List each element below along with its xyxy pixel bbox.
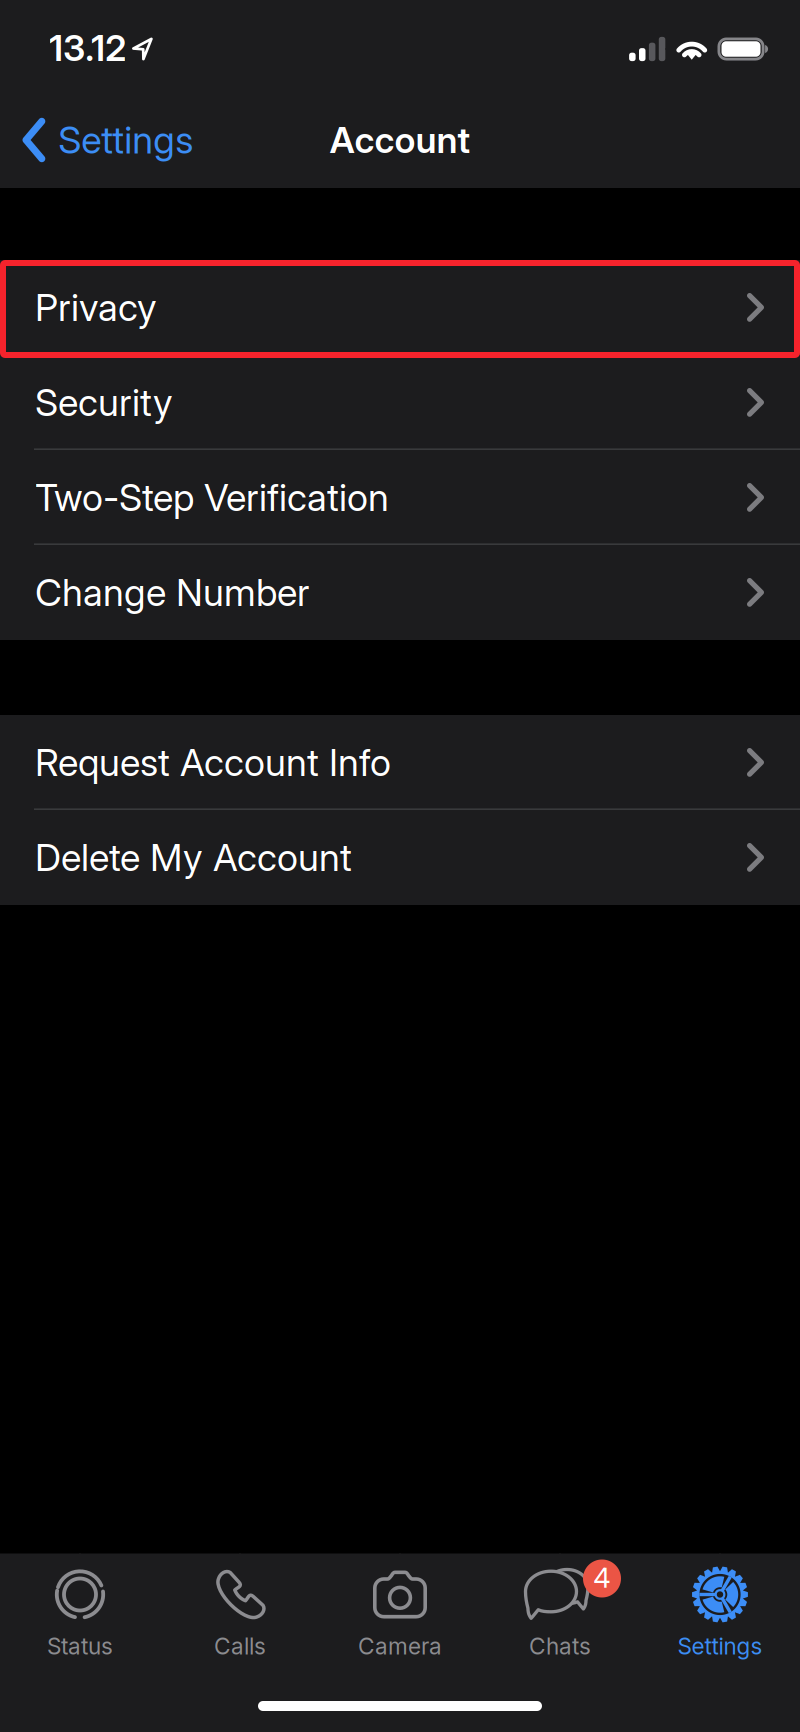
staticText: Change Number <box>35 570 309 615</box>
staticText: Calls <box>214 1632 266 1660</box>
button[interactable]: Delete My Account <box>0 810 800 905</box>
staticText: Privacy <box>35 285 157 330</box>
staticText: Security <box>35 380 173 425</box>
staticText: Settings <box>58 117 193 163</box>
button[interactable]: Status <box>0 1553 160 1663</box>
staticText: Settings <box>677 1632 762 1660</box>
staticText: Account <box>329 118 470 162</box>
button[interactable]: Change Number <box>0 545 800 640</box>
staticText: 4 <box>593 1561 611 1594</box>
button[interactable]: Request Account Info <box>0 715 800 810</box>
button[interactable]: Privacy <box>0 260 800 355</box>
staticText: 13.12 <box>49 26 126 70</box>
button[interactable]: Calls <box>160 1553 320 1663</box>
button[interactable]: 4 <box>480 1553 640 1663</box>
staticText: Request Account Info <box>35 740 391 785</box>
staticText: Delete My Account <box>35 835 352 880</box>
button[interactable]: Settings <box>0 92 209 188</box>
staticText: Status <box>47 1632 113 1660</box>
button[interactable]: Security <box>0 355 800 450</box>
staticText: Camera <box>358 1632 442 1660</box>
button[interactable]: Two-Step Verification <box>0 450 800 545</box>
button[interactable]: Settings <box>640 1553 800 1663</box>
staticText: Chats <box>529 1632 591 1660</box>
button[interactable]: Camera <box>320 1553 480 1663</box>
staticText: Two-Step Verification <box>35 475 389 520</box>
